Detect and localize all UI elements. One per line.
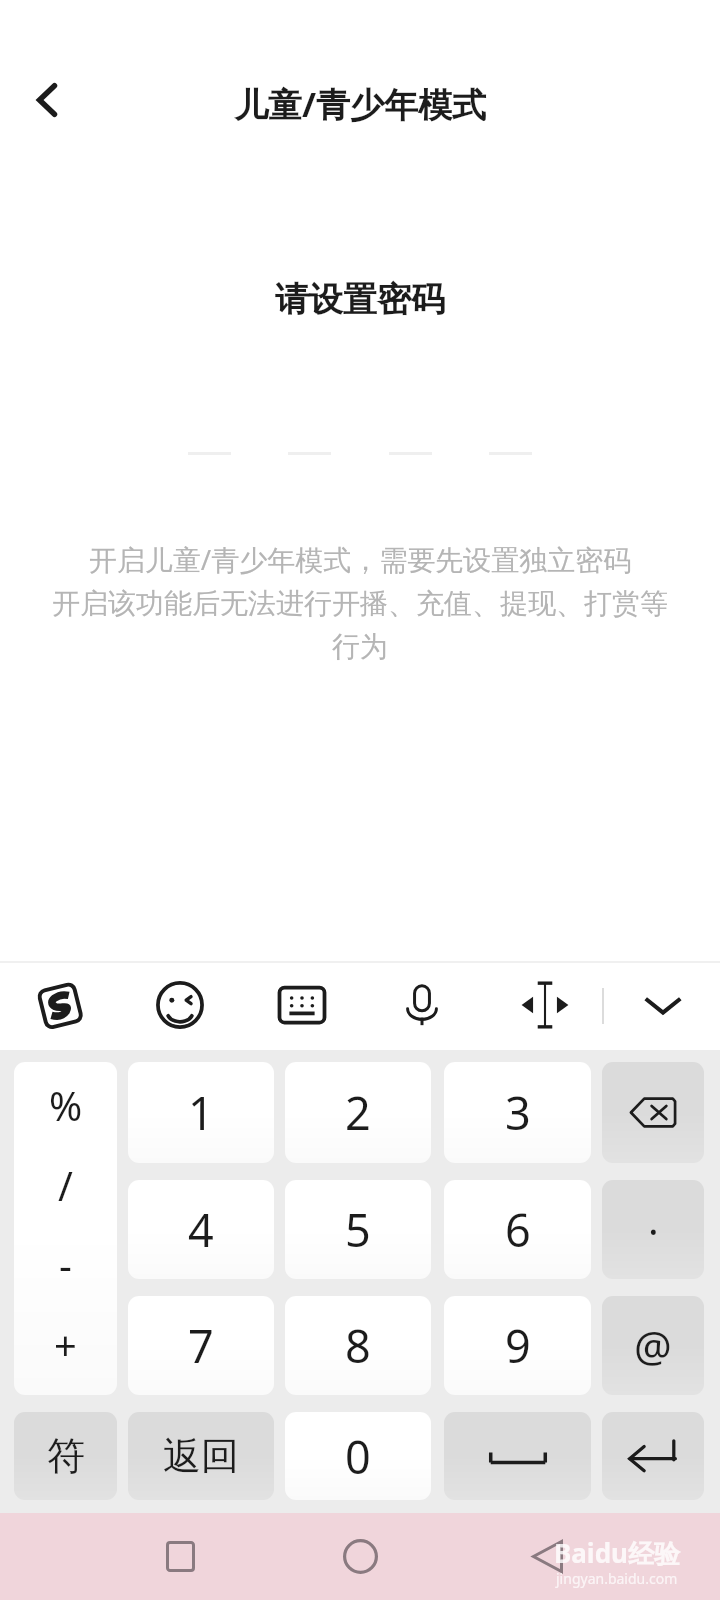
staticText: 7 <box>188 1315 214 1376</box>
button[interactable]: 最近任务 <box>130 1513 230 1600</box>
button[interactable]: 6 <box>444 1180 591 1279</box>
staticText: 返回 <box>163 1432 239 1480</box>
staticText: 4 <box>188 1199 214 1260</box>
staticText: 2 <box>345 1082 371 1143</box>
staticText: 行为 <box>0 629 720 664</box>
staticText: - <box>59 1237 72 1291</box>
button[interactable]: 3 <box>444 1062 591 1163</box>
button[interactable]: 5 <box>285 1180 431 1279</box>
button[interactable]: · <box>602 1180 704 1279</box>
staticText: 请设置密码 <box>0 278 720 321</box>
button[interactable]: 1 <box>128 1062 274 1163</box>
button[interactable]: 返回 <box>497 1513 597 1600</box>
staticText: · <box>648 1203 659 1257</box>
button[interactable]: 删除 <box>602 1062 704 1163</box>
button[interactable]: 7 <box>128 1296 274 1395</box>
staticText: 儿童/青少年模式 <box>0 81 720 127</box>
staticText: jingyan.baidu.com <box>556 1569 678 1588</box>
button[interactable]: 9 <box>444 1296 591 1395</box>
button[interactable]: 符号 <box>14 1062 117 1395</box>
button[interactable]: @ <box>602 1296 704 1395</box>
staticText: 8 <box>345 1315 371 1376</box>
button[interactable]: 主页 <box>310 1513 410 1600</box>
button[interactable]: 光标移动 <box>506 961 584 1049</box>
staticText: 符 <box>47 1432 85 1480</box>
button[interactable]: 输入法 <box>21 961 99 1049</box>
button[interactable]: 回车 <box>602 1412 704 1500</box>
staticText: 6 <box>505 1199 531 1260</box>
staticText: 3 <box>505 1082 531 1143</box>
staticText: / <box>58 1158 73 1212</box>
button[interactable]: 返回 <box>16 69 78 131</box>
staticText: 0 <box>345 1426 371 1487</box>
staticText: 开启儿童/青少年模式，需要先设置独立密码 <box>0 540 720 578</box>
button[interactable]: 符 <box>14 1412 117 1500</box>
button[interactable]: 空格 <box>444 1412 591 1500</box>
staticText: Baidu经验 <box>554 1535 680 1571</box>
staticText: % <box>49 1078 83 1132</box>
button[interactable]: 2 <box>285 1062 431 1163</box>
button[interactable]: 0 <box>285 1412 431 1500</box>
staticText: 5 <box>345 1199 371 1260</box>
button[interactable]: 4 <box>128 1180 274 1279</box>
button[interactable]: 8 <box>285 1296 431 1395</box>
staticText: @ <box>634 1317 672 1374</box>
button[interactable]: 键盘 <box>263 961 341 1049</box>
button[interactable]: 语音输入 <box>383 961 461 1049</box>
button[interactable]: 收起键盘 <box>624 961 702 1049</box>
button[interactable]: 返回 <box>128 1412 274 1500</box>
staticText: 9 <box>505 1315 531 1376</box>
staticText: + <box>54 1317 77 1371</box>
staticText: 1 <box>188 1082 214 1143</box>
staticText: 开启该功能后无法进行开播、充值、提现、打赏等 <box>0 586 720 621</box>
button[interactable]: 表情 <box>141 961 219 1049</box>
